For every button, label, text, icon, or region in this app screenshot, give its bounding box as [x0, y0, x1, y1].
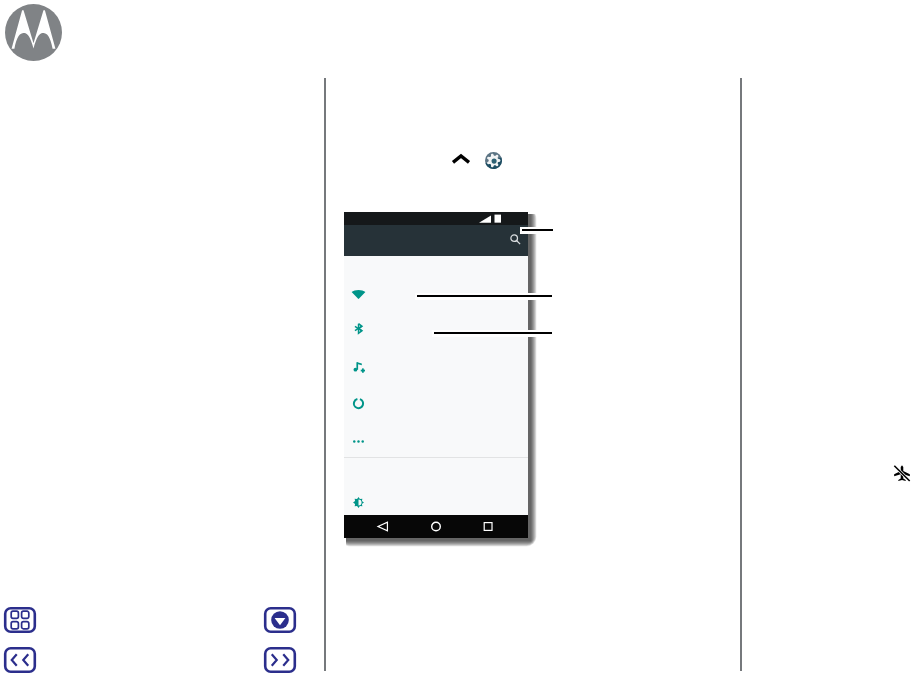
button[interactable]: Apps [2, 605, 38, 635]
button[interactable]: Display [352, 496, 365, 509]
button[interactable]: Motorola [5, 4, 62, 61]
button[interactable]: Airplane mode off [894, 465, 910, 481]
button[interactable]: More [352, 435, 365, 448]
button[interactable]: Collapse [262, 605, 298, 635]
button[interactable]: Bluetooth [353, 323, 364, 334]
button[interactable]: Music [352, 360, 366, 374]
button[interactable]: Settings [485, 152, 502, 169]
button[interactable]: Wi-Fi [351, 286, 366, 301]
button[interactable]: Next [262, 645, 298, 674]
button[interactable]: Data usage [352, 397, 365, 410]
button[interactable]: Search [510, 234, 521, 245]
button[interactable]: Collapse [451, 150, 471, 170]
button[interactable]: Previous [2, 645, 38, 674]
